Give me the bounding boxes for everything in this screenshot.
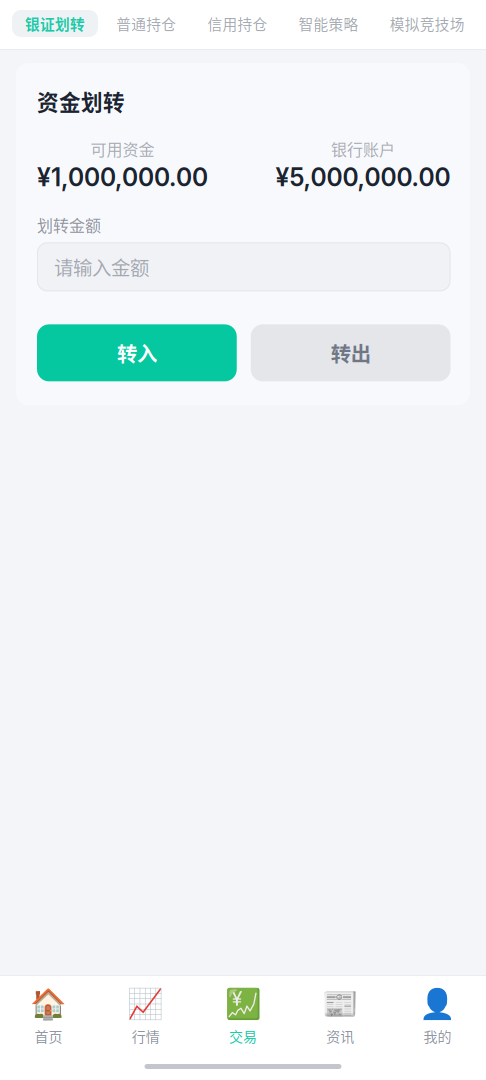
button[interactable]: 首页: [0, 987, 97, 1046]
staticText: 请输入金额: [54, 253, 149, 281]
staticText: 划转金额: [37, 213, 101, 236]
staticText: 智能策略: [299, 13, 359, 34]
staticText: 转入: [117, 338, 157, 368]
staticText: 首页: [35, 1026, 63, 1046]
button[interactable]: 转入: [37, 324, 237, 381]
button[interactable]: 资讯: [292, 987, 389, 1046]
button[interactable]: 智能策略: [286, 10, 372, 37]
staticText: 转出: [331, 338, 371, 368]
staticText: 📈: [127, 987, 164, 1021]
button[interactable]: 交易: [194, 987, 292, 1046]
button[interactable]: 信用持仓: [194, 10, 280, 37]
staticText: ¥5,000,000.00: [275, 162, 450, 192]
staticText: 我的: [423, 1026, 451, 1046]
staticText: 可用资金: [90, 137, 154, 160]
button[interactable]: 普通持仓: [103, 10, 189, 37]
button[interactable]: 行情: [97, 987, 194, 1046]
staticText: 👤: [419, 987, 456, 1021]
staticText: 资讯: [326, 1026, 354, 1046]
staticText: 普通持仓: [116, 13, 176, 34]
staticText: 🏠: [30, 987, 67, 1021]
button[interactable]: 我的: [389, 987, 486, 1046]
button[interactable]: 银证划转: [12, 10, 98, 37]
button[interactable]: 模拟竞技场: [377, 10, 478, 37]
staticText: 信用持仓: [207, 13, 267, 34]
staticText: 📰: [322, 987, 359, 1021]
staticText: 💹: [224, 987, 261, 1021]
staticText: 银证划转: [25, 13, 85, 34]
staticText: 交易: [229, 1026, 257, 1046]
staticText: ¥1,000,000.00: [37, 162, 208, 192]
staticText: 银行账户: [331, 137, 395, 160]
staticText: 行情: [132, 1026, 160, 1046]
button[interactable]: 转出: [251, 324, 451, 381]
staticText: 资金划转: [37, 85, 125, 117]
staticText: 模拟竞技场: [390, 13, 465, 34]
